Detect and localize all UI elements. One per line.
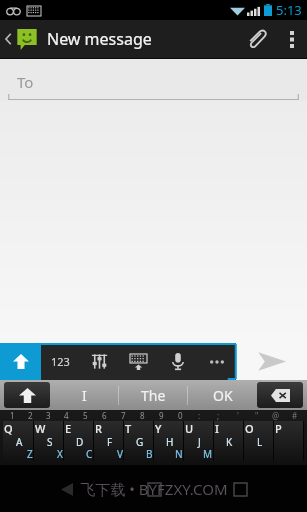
button[interactable]: To: [8, 72, 299, 101]
staticText: 123: [51, 354, 70, 369]
button[interactable]: Back: [47, 474, 87, 504]
staticText: 2: [28, 410, 33, 421]
staticText: OK: [213, 386, 233, 405]
staticText: 7: [121, 410, 126, 421]
staticText: B: [146, 447, 153, 461]
button[interactable]: 123: [41, 343, 80, 380]
staticText: S: [47, 435, 53, 449]
staticText: A: [16, 435, 23, 449]
button[interactable]: Delete: [257, 382, 303, 408]
button[interactable]: Attach: [235, 20, 277, 58]
staticText: 5: [83, 410, 88, 421]
staticText: 6: [102, 410, 107, 421]
staticText: 4: [64, 410, 69, 421]
staticText: W: [35, 421, 46, 436]
staticText: R: [95, 421, 102, 436]
staticText: ": [255, 410, 259, 421]
staticText: Y: [155, 421, 162, 436]
button[interactable]: I: [50, 380, 119, 410]
staticText: O: [245, 421, 254, 436]
staticText: N: [175, 447, 183, 461]
button[interactable]: Shift: [4, 382, 50, 408]
button[interactable]: Q: [3, 421, 33, 461]
staticText: P: [275, 421, 282, 436]
button[interactable]: Home: [134, 474, 174, 504]
staticText: Z: [27, 447, 33, 461]
staticText: #: [292, 410, 298, 421]
staticText: H: [166, 435, 174, 449]
button[interactable]: U: [184, 421, 213, 461]
staticText: To: [17, 72, 34, 92]
staticText: :: [198, 410, 201, 421]
button[interactable]: Change keyboard: [119, 343, 158, 380]
staticText: 5:13: [276, 1, 302, 19]
button[interactable]: Shift: [0, 343, 41, 380]
staticText: I: [215, 421, 219, 436]
staticText: 8: [140, 410, 145, 421]
staticText: M: [203, 447, 213, 461]
staticText: 3: [46, 410, 51, 421]
staticText: C: [86, 447, 93, 461]
staticText: E: [65, 421, 72, 436]
staticText: X: [57, 447, 63, 461]
staticText: Q: [4, 421, 13, 436]
staticText: 9: [159, 410, 164, 421]
staticText: V: [117, 447, 123, 461]
button[interactable]: Y: [154, 421, 183, 461]
staticText: L: [257, 435, 263, 449]
button[interactable]: O: [244, 421, 273, 461]
staticText: F: [107, 435, 113, 449]
button[interactable]: E: [64, 421, 93, 461]
staticText: 1: [10, 410, 15, 421]
button[interactable]: W: [34, 421, 63, 461]
staticText: K: [226, 435, 233, 449]
staticText: ;: [217, 410, 220, 421]
staticText: J: [198, 435, 201, 449]
staticText: ': [237, 410, 239, 421]
button[interactable]: I: [214, 421, 243, 461]
staticText: D: [76, 435, 84, 449]
button[interactable]: OK: [188, 380, 257, 410]
staticText: T: [125, 421, 132, 436]
button[interactable]: Send: [237, 343, 307, 380]
button[interactable]: R: [94, 421, 123, 461]
staticText: @: [272, 410, 280, 421]
staticText: U: [185, 421, 194, 436]
button[interactable]: New message: [0, 20, 160, 58]
button[interactable]: Voice input: [158, 343, 197, 380]
staticText: G: [136, 435, 144, 449]
staticText: The: [141, 386, 166, 405]
staticText: 飞下载 • BYFZXY.COM: [80, 479, 228, 499]
button[interactable]: More: [197, 343, 236, 380]
button[interactable]: The: [119, 380, 188, 410]
staticText: 0: [178, 410, 183, 421]
button[interactable]: T: [124, 421, 153, 461]
staticText: New message: [47, 28, 152, 50]
button[interactable]: More options: [277, 20, 307, 58]
staticText: I: [82, 386, 87, 405]
button[interactable]: Settings: [80, 343, 119, 380]
button[interactable]: Recent apps: [220, 474, 260, 504]
button[interactable]: P: [274, 421, 303, 461]
